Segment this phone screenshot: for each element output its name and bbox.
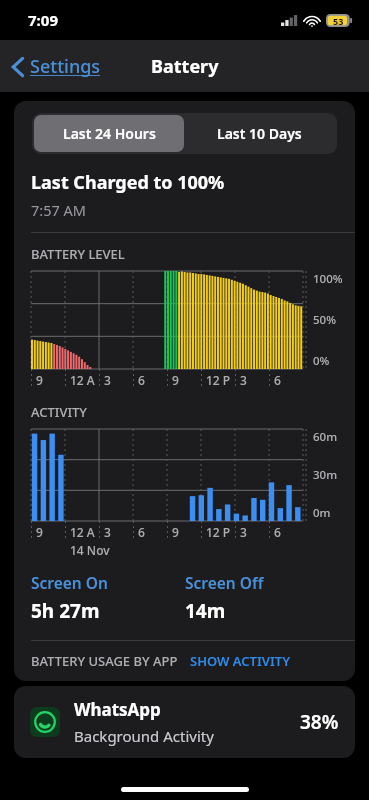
staticText: 12 P — [206, 524, 231, 540]
button[interactable]: Settings — [8, 48, 105, 85]
staticText: 12 P — [206, 372, 231, 388]
staticText: Last 24 Hours — [63, 124, 156, 143]
staticText: 9 — [36, 524, 43, 540]
staticText: 38% — [300, 709, 339, 735]
staticText: Background Activity — [74, 726, 214, 746]
staticText: 9 — [172, 372, 179, 388]
button[interactable]: SHOW ACTIVITY — [190, 652, 291, 670]
button[interactable]: Last 24 Hours — [34, 115, 184, 152]
staticText: 3 — [240, 524, 247, 540]
staticText: Last 10 Days — [217, 124, 302, 143]
button[interactable]: Last 10 Days — [184, 115, 335, 152]
staticText: 7:09 — [28, 10, 58, 30]
staticText: BATTERY LEVEL — [31, 245, 125, 263]
staticText: Settings — [30, 54, 101, 79]
staticText: 12 A — [70, 372, 95, 388]
staticText: Battery — [151, 54, 219, 79]
button[interactable]: WhatsApp — [14, 686, 355, 758]
staticText: 53 — [333, 15, 344, 27]
staticText: 60m — [313, 429, 338, 445]
staticText: 0% — [313, 353, 330, 369]
staticText: 6 — [138, 524, 145, 540]
staticText: 12 A — [70, 524, 95, 540]
staticText: BATTERY USAGE BY APP — [31, 652, 178, 670]
staticText: 6 — [274, 524, 281, 540]
staticText: 30m — [313, 467, 338, 483]
staticText: 9 — [172, 524, 179, 540]
staticText: 100% — [313, 271, 343, 287]
staticText: Screen Off — [185, 572, 264, 593]
staticText: SHOW ACTIVITY — [190, 652, 291, 670]
staticText: 3 — [240, 372, 247, 388]
staticText: Last Charged to 100% — [31, 170, 225, 195]
staticText: ACTIVITY — [31, 403, 87, 421]
staticText: 14m — [185, 598, 226, 624]
staticText: 5h 27m — [31, 598, 100, 624]
staticText: Screen On — [31, 572, 108, 593]
staticText: 50% — [313, 312, 336, 328]
staticText: 3 — [104, 524, 111, 540]
staticText: 3 — [104, 372, 111, 388]
staticText: 6 — [138, 372, 145, 388]
staticText: 14 Nov — [70, 542, 110, 558]
staticText: 6 — [274, 372, 281, 388]
staticText: 9 — [36, 372, 43, 388]
staticText: 7:57 AM — [31, 200, 86, 220]
staticText: WhatsApp — [74, 698, 161, 721]
staticText: 0m — [313, 505, 331, 521]
